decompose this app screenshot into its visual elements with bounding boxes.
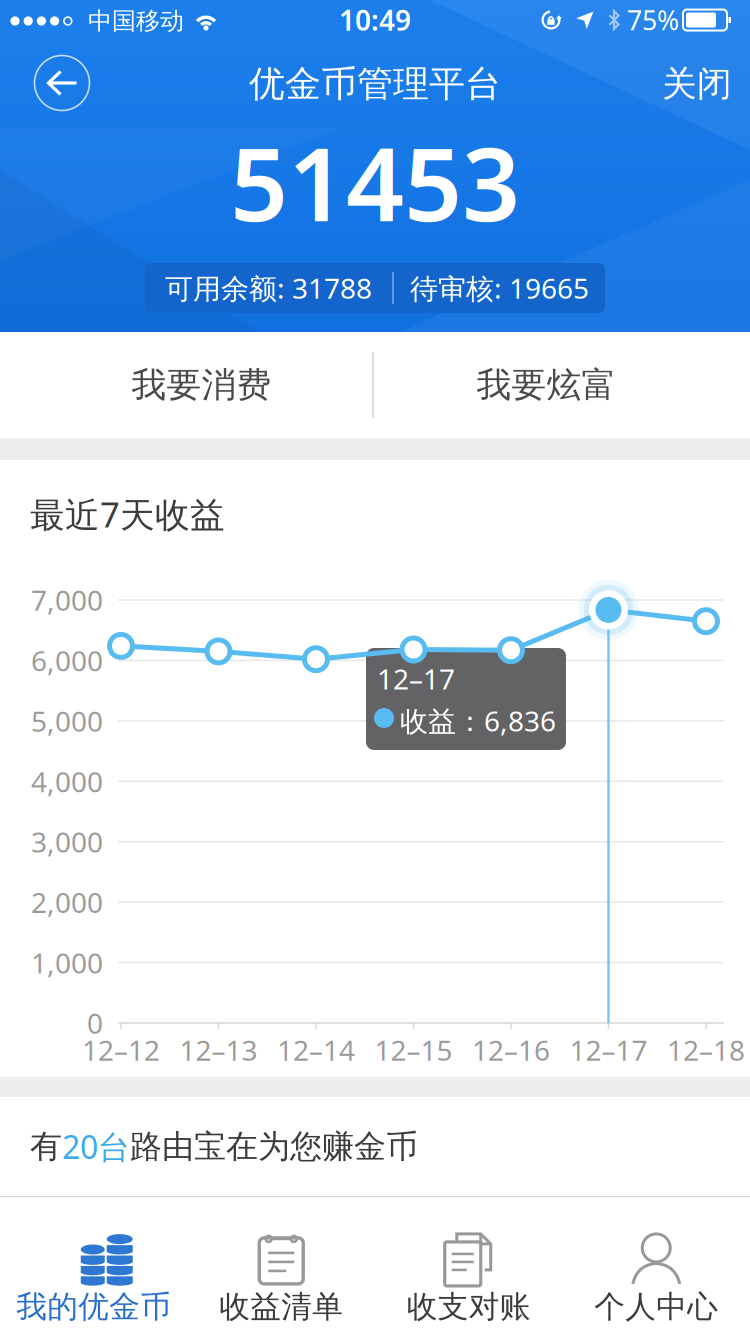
staticText: 我要消费 bbox=[131, 364, 271, 406]
staticText: 3,000 bbox=[31, 823, 103, 860]
staticText: 5,000 bbox=[31, 702, 103, 739]
button[interactable]: 关闭 bbox=[652, 54, 742, 114]
staticText: 12–13 bbox=[179, 1031, 257, 1069]
staticText: 12–15 bbox=[374, 1031, 452, 1069]
button[interactable]: 收益清单 bbox=[187, 1197, 375, 1334]
staticText: 我的优金币 bbox=[16, 1288, 171, 1326]
staticText: 4,000 bbox=[31, 763, 103, 800]
staticText: 10:49 bbox=[339, 1, 411, 39]
button[interactable]: 个人中心 bbox=[562, 1197, 750, 1334]
staticText: 收益清单 bbox=[219, 1288, 343, 1326]
staticText: 6,000 bbox=[31, 642, 103, 679]
staticText: 0 bbox=[87, 1004, 103, 1042]
button[interactable]: 收支对账 bbox=[375, 1197, 562, 1334]
staticText: 7,000 bbox=[31, 581, 103, 619]
staticText: 12–18 bbox=[667, 1031, 745, 1069]
staticText: 可用余额: 31788 bbox=[165, 269, 372, 307]
staticText: 待审核: 19665 bbox=[410, 269, 589, 307]
staticText: 12–17 bbox=[377, 660, 455, 697]
staticText: 2,000 bbox=[31, 883, 103, 921]
button[interactable]: 返回 bbox=[34, 55, 90, 111]
staticText: 收支对账 bbox=[407, 1288, 531, 1326]
staticText: 路由宝在为您赚金币 bbox=[130, 1127, 418, 1166]
staticText: 有 bbox=[30, 1127, 62, 1166]
button[interactable]: 我要炫富 bbox=[373, 332, 720, 438]
staticText: 个人中心 bbox=[594, 1288, 718, 1326]
staticText: 12–12 bbox=[82, 1031, 160, 1069]
staticText: 75% bbox=[627, 2, 679, 38]
staticText: 我要炫富 bbox=[476, 364, 616, 406]
staticText: 收益：6,836 bbox=[400, 702, 556, 739]
staticText: 关闭 bbox=[662, 63, 732, 105]
staticText: 12–17 bbox=[569, 1031, 647, 1069]
staticText: 51453 bbox=[230, 115, 520, 249]
staticText: 12–14 bbox=[277, 1031, 355, 1069]
staticText: 中国移动 bbox=[88, 6, 184, 36]
button[interactable]: 我的优金币 bbox=[0, 1197, 187, 1334]
staticText: 12–16 bbox=[472, 1031, 550, 1069]
staticText: 最近7天收益 bbox=[30, 491, 225, 537]
button[interactable]: 我要消费 bbox=[30, 332, 373, 438]
button[interactable]: 有 bbox=[0, 1097, 750, 1196]
staticText: 优金币管理平台 bbox=[249, 62, 501, 106]
staticText: 1,000 bbox=[31, 944, 103, 981]
staticText: 20台 bbox=[62, 1125, 130, 1168]
